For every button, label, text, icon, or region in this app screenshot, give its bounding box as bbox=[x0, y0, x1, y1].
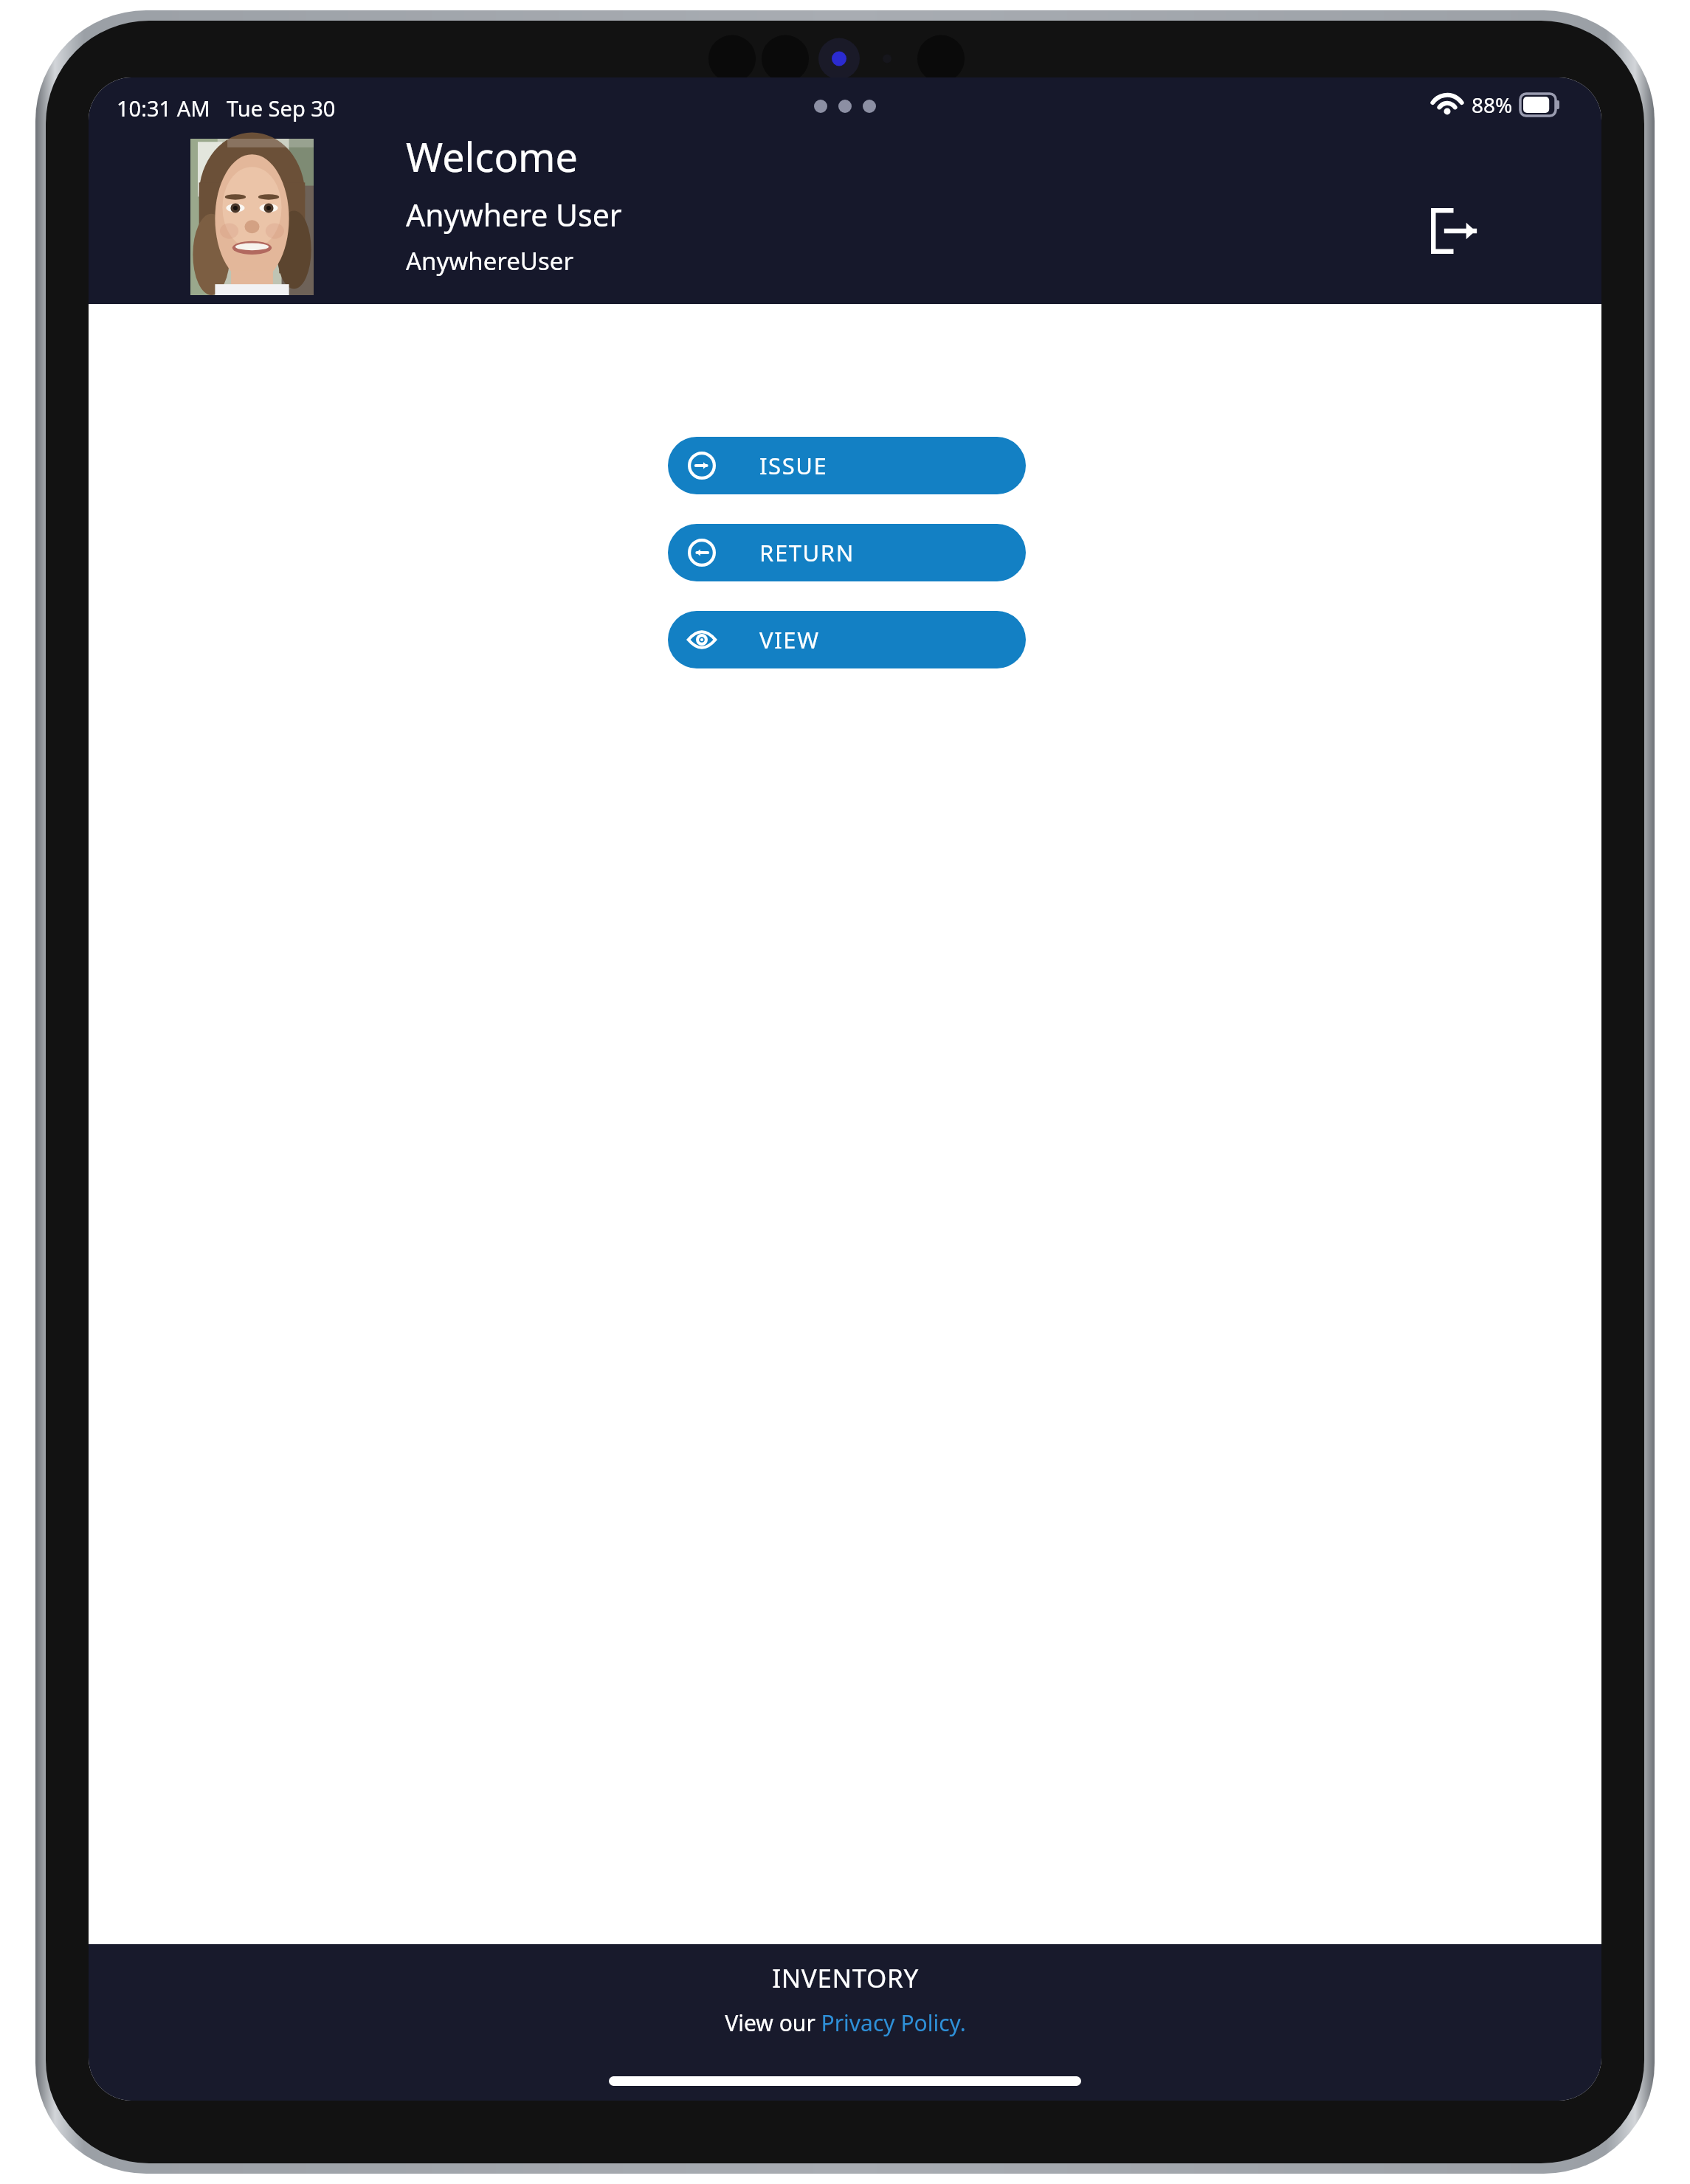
staticText: AnywhereUser bbox=[406, 244, 574, 277]
button[interactable]: RETURN bbox=[668, 524, 1026, 581]
button[interactable]: Log out bbox=[1410, 187, 1498, 275]
staticText: RETURN bbox=[759, 537, 855, 568]
staticText: VIEW bbox=[759, 624, 820, 655]
button[interactable]: ISSUE bbox=[668, 437, 1026, 494]
staticText: 10:31 AM Tue Sep 30 bbox=[117, 94, 336, 122]
staticText: ISSUE bbox=[759, 450, 828, 481]
button[interactable]: View our Privacy Policy. bbox=[725, 2008, 966, 2038]
button[interactable]: INVENTORY bbox=[772, 1960, 919, 1996]
staticText: View our Privacy Policy. bbox=[725, 2008, 966, 2038]
staticText: 88% bbox=[1472, 91, 1513, 119]
button[interactable]: VIEW bbox=[668, 611, 1026, 668]
button[interactable]: Profile photo bbox=[190, 139, 314, 295]
staticText: Anywhere User bbox=[406, 194, 622, 235]
staticText: Welcome bbox=[406, 129, 579, 184]
